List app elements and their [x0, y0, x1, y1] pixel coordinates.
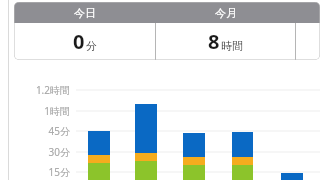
staticText: 今月: [215, 6, 237, 20]
staticText: 0: [73, 28, 85, 55]
other: Usage bar chart: [0, 0, 320, 180]
staticText: 1.2時間: [35, 83, 70, 97]
button[interactable]: 0: [14, 23, 155, 60]
button[interactable]: 今月: [156, 2, 295, 23]
staticText: 分: [86, 39, 97, 53]
staticText: 時間: [221, 39, 243, 53]
staticText: 今日: [74, 6, 96, 20]
button[interactable]: 8: [156, 23, 295, 60]
staticText: 45分: [48, 124, 70, 138]
staticText: 8: [208, 28, 220, 55]
staticText: 1時間: [44, 104, 70, 118]
button[interactable]: [296, 23, 320, 60]
staticText: 30分: [48, 145, 70, 159]
button[interactable]: 今日: [14, 2, 155, 23]
staticText: 15分: [48, 165, 70, 179]
